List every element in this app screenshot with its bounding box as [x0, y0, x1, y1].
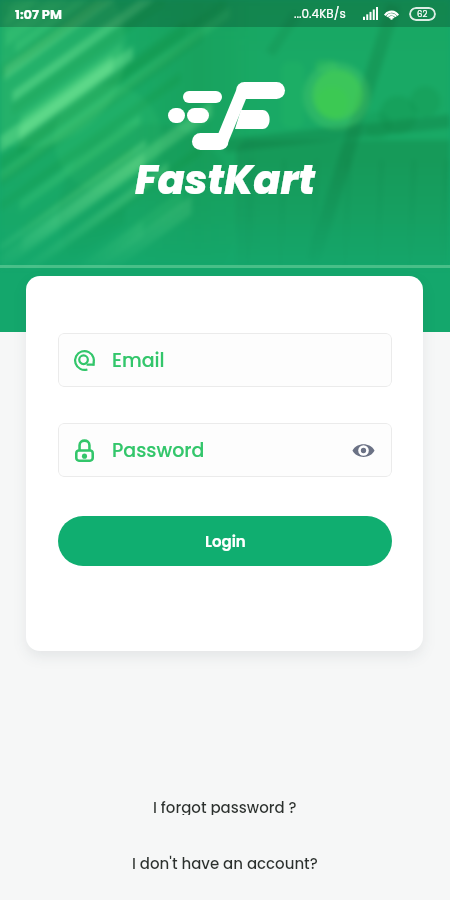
button[interactable]: Show password — [346, 430, 380, 470]
staticText: 62 — [417, 8, 428, 20]
staticText: ...0.4KB/s — [294, 5, 346, 22]
button[interactable]: I don't have an account? — [118, 846, 332, 878]
staticText: Password — [112, 437, 205, 464]
staticText: Email — [112, 347, 165, 374]
button[interactable]: Email — [58, 333, 392, 387]
staticText: FastKart — [135, 152, 316, 208]
staticText: Login — [205, 531, 246, 552]
button[interactable]: Password — [58, 423, 392, 477]
button[interactable]: I forgot password ? — [139, 790, 311, 822]
staticText: I forgot password ? — [153, 797, 297, 815]
button[interactable]: Login — [58, 516, 392, 566]
staticText: I don't have an account? — [132, 853, 318, 871]
staticText: 1:07 PM — [15, 5, 62, 23]
